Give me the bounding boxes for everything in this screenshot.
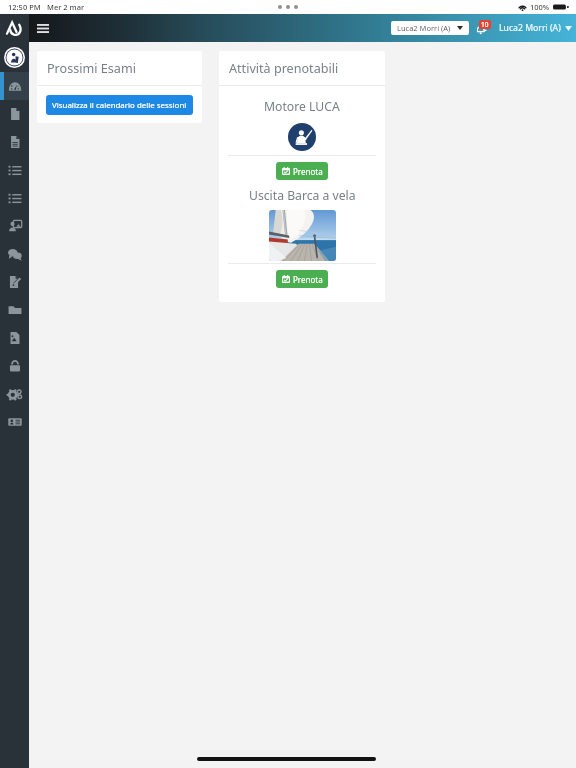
button[interactable]: Documents — [0, 100, 29, 128]
button[interactable]: Document with lines — [0, 128, 29, 156]
button[interactable]: Presentation — [0, 212, 29, 240]
button[interactable]: Logo — [0, 14, 29, 42]
staticText: Prossimi Esami — [47, 60, 136, 77]
staticText: Uscita Barca a vela — [249, 187, 356, 204]
button[interactable]: Edit — [0, 268, 29, 296]
staticText: Visualizza il calendario delle sessioni — [52, 100, 187, 111]
button[interactable]: Visualizza il calendario delle sessioni — [46, 95, 193, 115]
button[interactable]: Media — [0, 324, 29, 352]
button[interactable]: Profile — [0, 42, 29, 72]
staticText: Attività prenotabili — [229, 60, 339, 77]
staticText: Prenota — [293, 166, 323, 177]
staticText: 12:50 PM — [8, 2, 41, 12]
button[interactable]: Dashboard — [0, 72, 29, 100]
staticText: 100% — [530, 2, 550, 12]
button[interactable]: Luca2 Morri (A) — [497, 22, 574, 34]
button[interactable]: Contacts — [0, 408, 29, 436]
button[interactable]: List — [0, 156, 29, 184]
button[interactable]: Folder — [0, 296, 29, 324]
button[interactable]: Prenota — [276, 270, 328, 288]
staticText: 10 — [481, 20, 489, 29]
button[interactable]: Prenota — [276, 162, 328, 180]
button[interactable]: Privacy — [0, 352, 29, 380]
button[interactable]: Settings — [0, 380, 29, 408]
staticText: Motore LUCA — [264, 98, 340, 115]
button[interactable]: Luca2 Morri (A) — [391, 21, 469, 35]
button[interactable]: Notifications — [476, 17, 490, 39]
staticText: Luca2 Morri (A) — [397, 23, 451, 33]
button[interactable]: Messages — [0, 240, 29, 268]
staticText: Mer 2 mar — [47, 2, 85, 12]
button[interactable]: List 2 — [0, 184, 29, 212]
button[interactable]: Menu — [29, 14, 57, 42]
staticText: Luca2 Morri (A) — [499, 22, 561, 34]
staticText: Prenota — [293, 274, 323, 285]
